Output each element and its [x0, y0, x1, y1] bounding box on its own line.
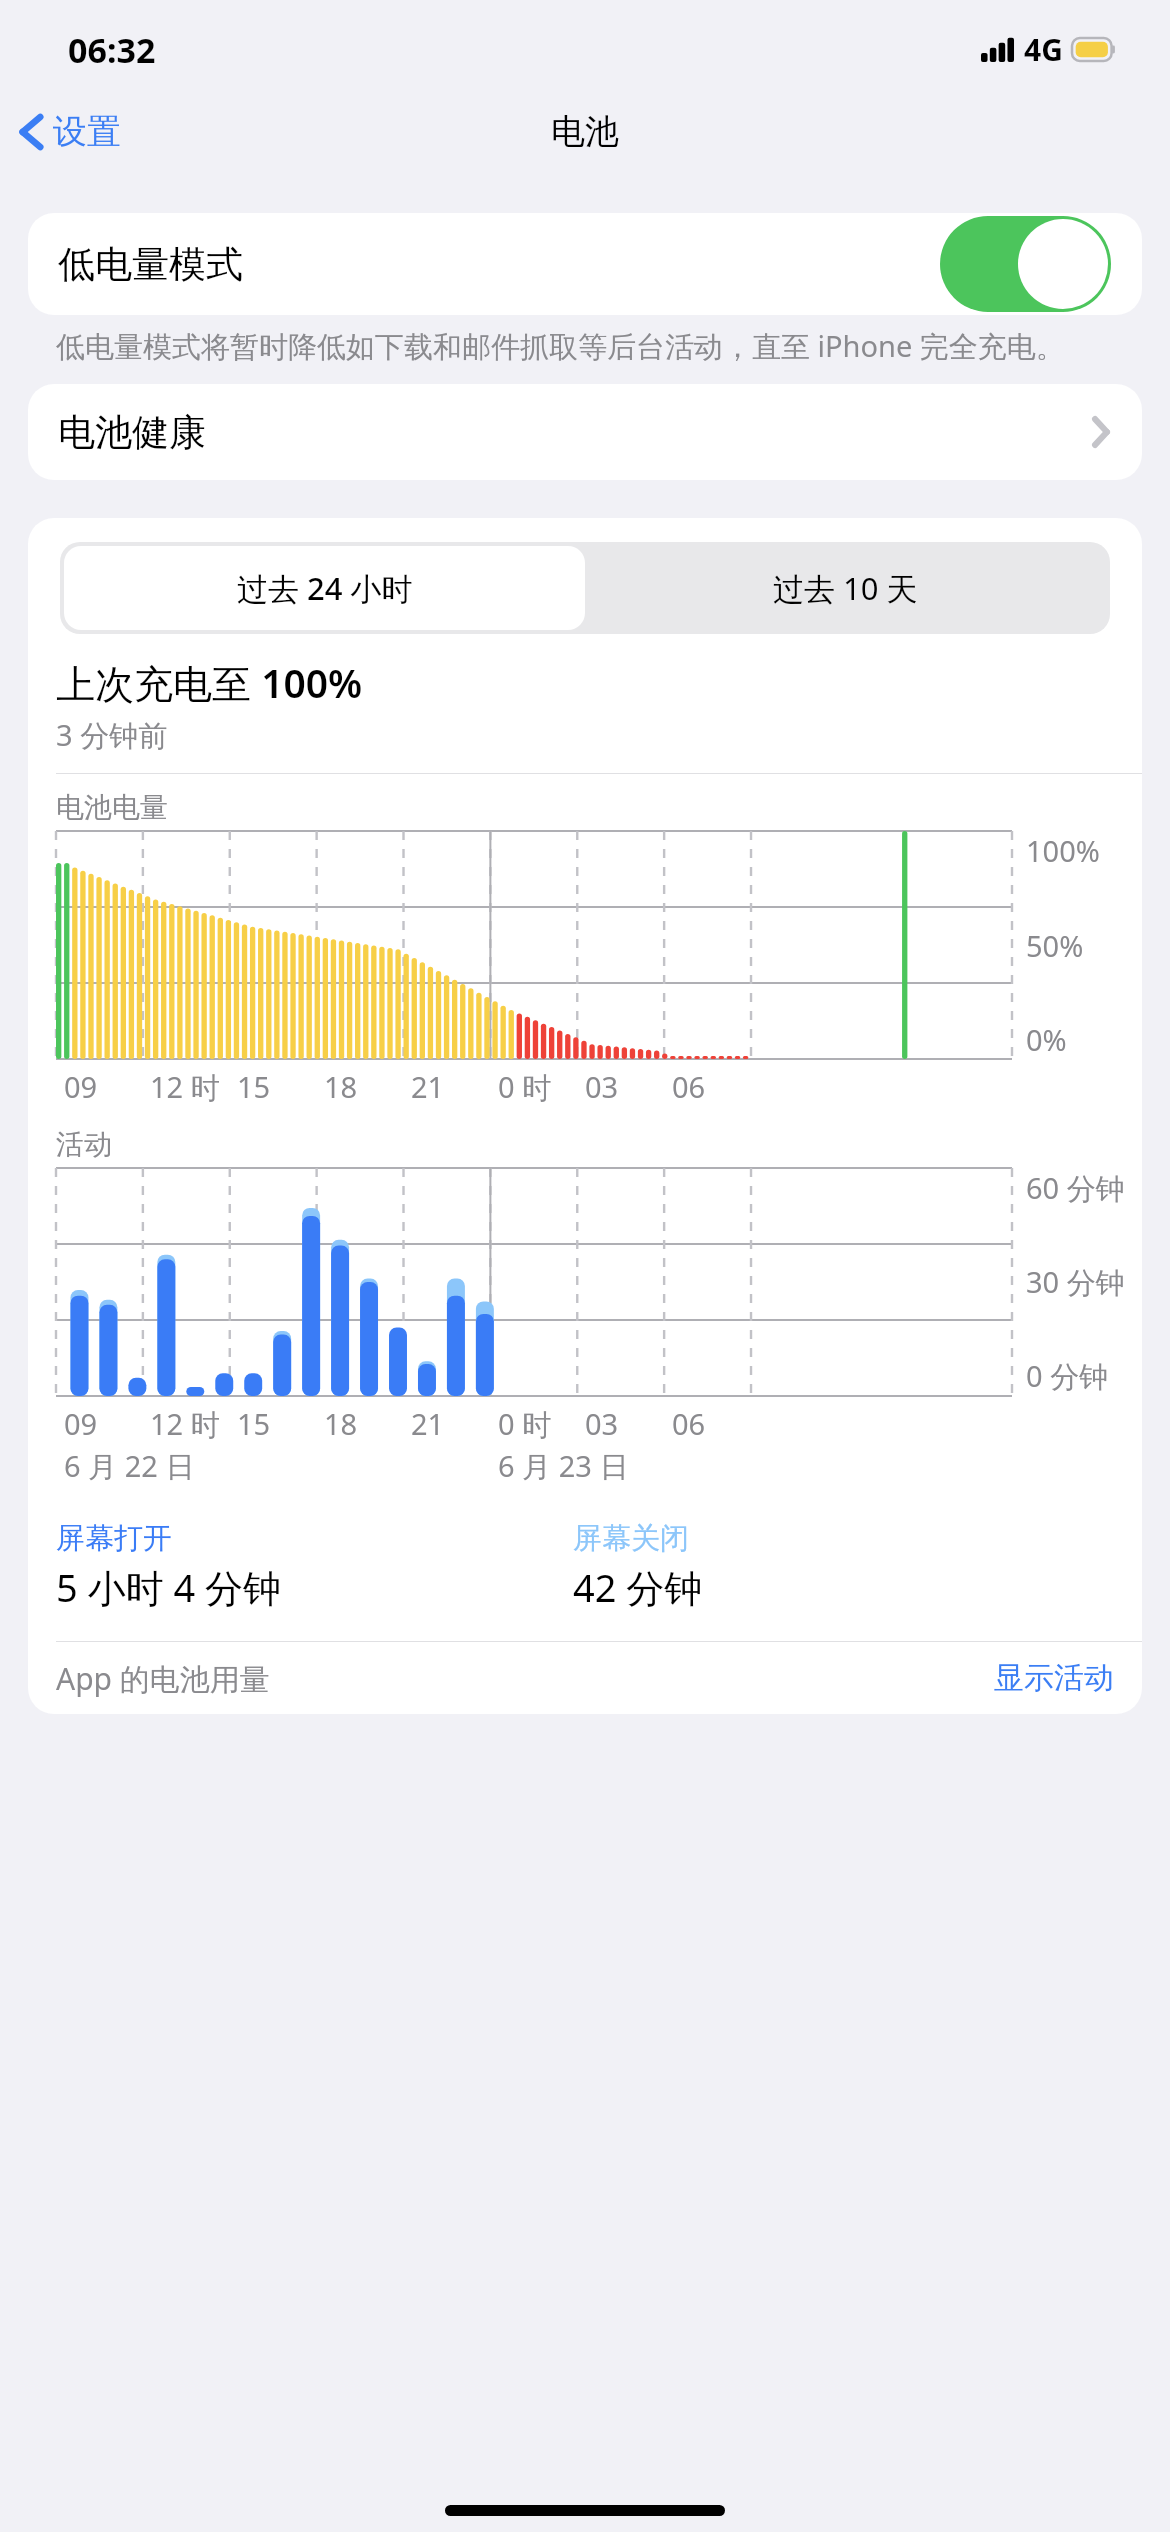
- staticText: 60 分钟: [1026, 1168, 1125, 1208]
- staticText: 21: [411, 1067, 445, 1106]
- staticText: 18: [324, 1404, 358, 1443]
- staticText: 电池电量: [56, 790, 168, 825]
- staticText: 上次充电至 100%: [56, 656, 363, 709]
- staticText: 过去 10 天: [773, 567, 918, 609]
- staticText: 09: [64, 1404, 98, 1443]
- staticText: 4G: [1024, 29, 1063, 70]
- staticText: 12 时: [150, 1067, 220, 1107]
- staticText: 0 时: [498, 1404, 552, 1444]
- staticText: 18: [324, 1067, 358, 1106]
- button[interactable]: 低电量模式: [28, 213, 1142, 315]
- staticText: 6 月 22 日: [64, 1446, 195, 1486]
- staticText: 21: [411, 1404, 445, 1443]
- staticText: 100%: [1026, 831, 1100, 870]
- staticText: 低电量模式将暂时降低如下载和邮件抓取等后台活动，直至 iPhone 完全充电。: [56, 326, 1114, 366]
- staticText: 6 月 23 日: [498, 1446, 629, 1486]
- staticText: 03: [585, 1404, 619, 1443]
- staticText: 设置: [53, 110, 121, 153]
- staticText: 3 分钟前: [56, 715, 168, 755]
- button[interactable]: 电池健康: [28, 384, 1142, 480]
- button[interactable]: 屏幕打开: [56, 1520, 573, 1613]
- staticText: 屏幕关闭: [573, 1520, 689, 1557]
- staticText: 09: [64, 1067, 98, 1106]
- staticText: 低电量模式: [58, 241, 243, 288]
- button[interactable]: App 的电池用量: [56, 1658, 270, 1699]
- staticText: 06: [672, 1067, 706, 1106]
- staticText: 5 小时 4 分钟: [56, 1561, 282, 1613]
- staticText: 06: [672, 1404, 706, 1443]
- button[interactable]: 设置: [0, 104, 133, 159]
- button[interactable]: 显示活动: [994, 1659, 1114, 1697]
- staticText: 06:32: [68, 27, 156, 73]
- staticText: 电池健康: [58, 409, 206, 456]
- staticText: 12 时: [150, 1404, 220, 1444]
- staticText: 活动: [56, 1127, 112, 1162]
- staticText: 15: [237, 1067, 271, 1106]
- staticText: 屏幕打开: [56, 1520, 172, 1557]
- staticText: 电池: [551, 110, 619, 153]
- staticText: 0%: [1026, 1020, 1067, 1059]
- staticText: 42 分钟: [573, 1561, 703, 1613]
- staticText: 03: [585, 1067, 619, 1106]
- staticText: 0 时: [498, 1067, 552, 1107]
- staticText: 过去 24 小时: [237, 567, 413, 609]
- staticText: 0 分钟: [1026, 1356, 1109, 1396]
- staticText: 30 分钟: [1026, 1262, 1125, 1302]
- button[interactable]: 过去 10 天: [585, 546, 1106, 630]
- staticText: 15: [237, 1404, 271, 1443]
- staticText: 50%: [1026, 926, 1084, 965]
- button[interactable]: 过去 24 小时: [64, 546, 585, 630]
- button[interactable]: 屏幕关闭: [573, 1520, 1142, 1613]
